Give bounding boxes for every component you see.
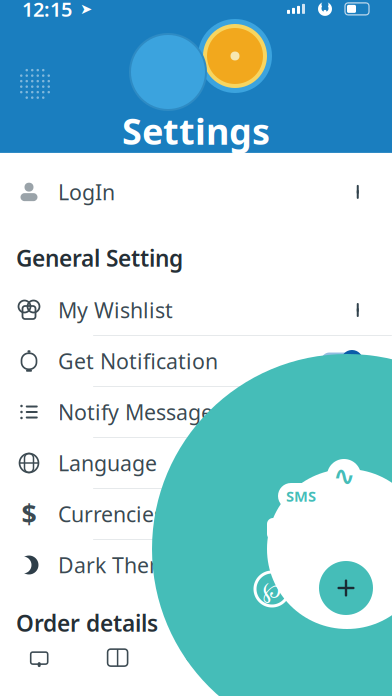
button[interactable]: My Wishlist — [0, 285, 392, 336]
staticText: LogIn — [58, 178, 115, 206]
staticText: My Wishlist — [58, 296, 173, 324]
button[interactable]: book — [78, 638, 157, 682]
staticText: ➤ — [80, 1, 92, 17]
staticText: SMS — [286, 486, 316, 506]
button[interactable]: Get Notification — [0, 336, 392, 387]
staticText: Dark Theme — [58, 551, 181, 579]
button[interactable]: $ — [0, 489, 392, 540]
button[interactable]: Notify Messages — [0, 387, 392, 438]
staticText: Settings — [122, 107, 270, 155]
staticText: Language — [58, 449, 157, 477]
staticText: Get Notification — [58, 347, 218, 375]
button[interactable]: Dark Theme — [0, 540, 392, 590]
staticText: Currencies — [58, 500, 164, 528]
button[interactable]: LogIn — [0, 167, 392, 217]
button[interactable]: Close share menu — [316, 558, 376, 618]
staticText: Notify Messages — [58, 398, 223, 426]
staticText: 12:15 — [22, 0, 72, 22]
button[interactable]: home — [0, 638, 78, 682]
staticText: $ — [21, 496, 36, 532]
staticText: Order details — [16, 608, 158, 638]
button[interactable]: search — [157, 638, 235, 682]
staticText: General Setting — [16, 243, 183, 273]
staticText: ℘ — [262, 574, 281, 604]
button[interactable]: Language — [0, 438, 392, 489]
staticText: ∿ — [333, 461, 355, 491]
